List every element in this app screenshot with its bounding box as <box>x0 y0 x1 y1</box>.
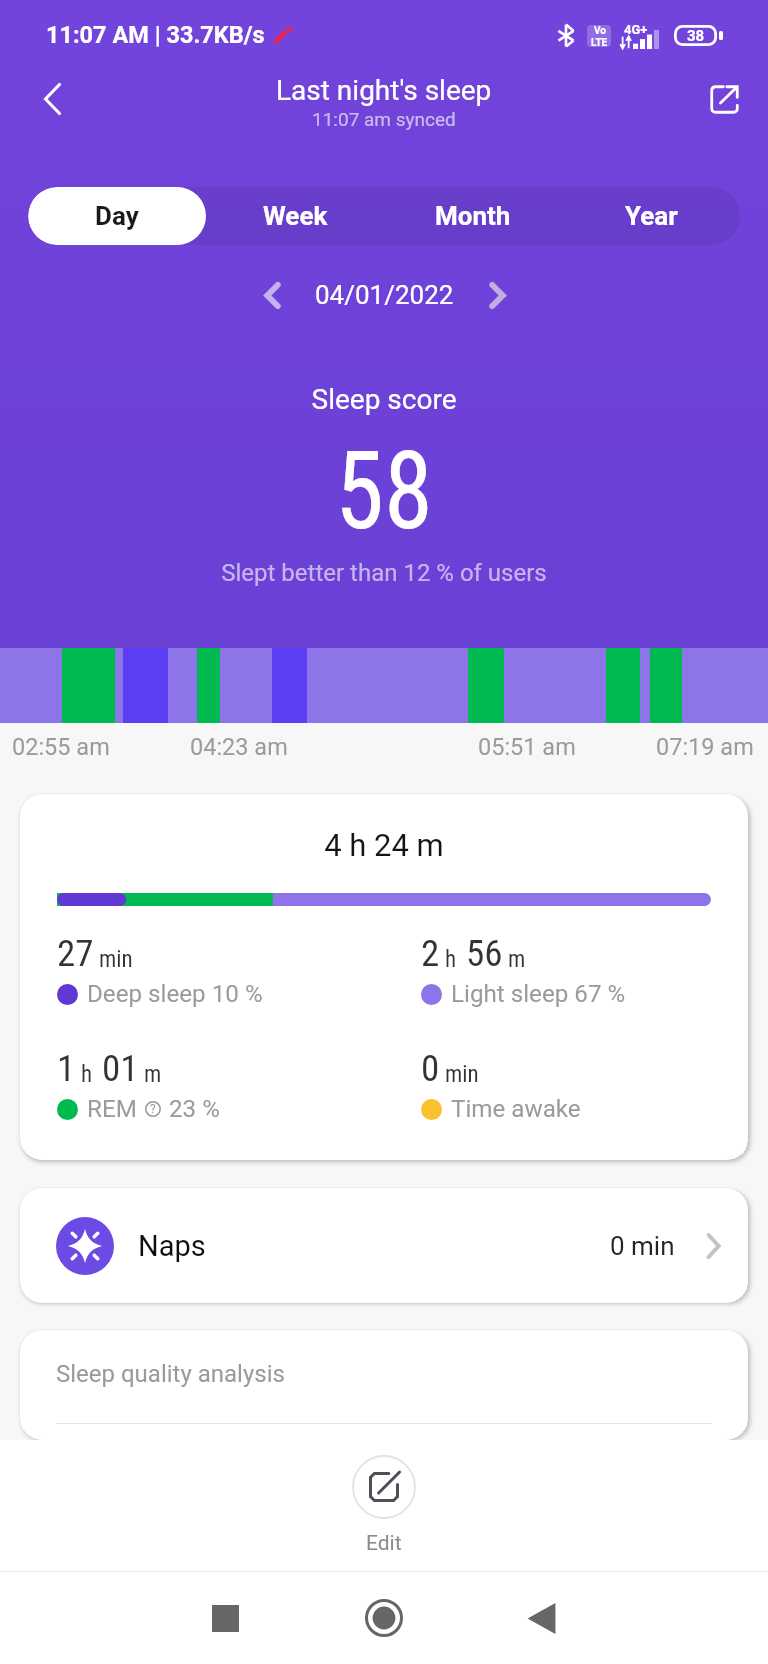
staticText: Month <box>435 201 511 231</box>
staticText: 01 <box>102 1047 139 1090</box>
staticText: Time awake <box>451 1095 581 1123</box>
staticText: 2 <box>421 932 440 975</box>
button[interactable]: Edit <box>312 1449 456 1562</box>
staticText: 04/01/2022 <box>315 280 454 310</box>
staticText: Sleep quality analysis <box>56 1360 285 1388</box>
staticText: 11:07 AM | 33.7KB/s <box>46 21 265 49</box>
button[interactable]: Home <box>349 1583 419 1653</box>
staticText: 11:07 am synced <box>312 108 456 130</box>
staticText: Edit <box>366 1531 402 1556</box>
button[interactable]: Naps <box>0 1188 768 1303</box>
staticText: m <box>144 1061 162 1088</box>
staticText: Day <box>95 201 139 231</box>
staticText: 23 % <box>169 1095 220 1123</box>
staticText: Last night's sleep <box>276 74 492 107</box>
staticText: 27 <box>57 932 94 975</box>
staticText: 1 <box>57 1047 76 1090</box>
staticText: m <box>508 946 526 973</box>
button[interactable]: Day <box>28 187 206 245</box>
staticText: Sleep score <box>0 383 768 416</box>
staticText: min <box>445 1061 479 1088</box>
staticText: Deep sleep 10 % <box>87 980 263 1008</box>
staticText: Naps <box>138 1229 206 1263</box>
staticText: 02:55 am <box>12 733 118 761</box>
staticText: 0 <box>421 1047 440 1090</box>
staticText: Vo <box>594 25 606 37</box>
staticText: LTE <box>591 37 608 47</box>
button[interactable]: Year <box>562 187 740 245</box>
staticText: Year <box>625 201 678 231</box>
staticText: ? <box>150 1102 156 1116</box>
staticText: Light sleep 67 % <box>451 980 626 1008</box>
staticText: 07:19 am <box>656 733 762 761</box>
staticText: 04:23 am <box>190 733 296 761</box>
staticText: min <box>99 946 133 973</box>
button[interactable]: Back <box>506 1583 576 1653</box>
button[interactable]: Week <box>206 187 384 245</box>
button[interactable]: Next day <box>472 270 522 320</box>
staticText: 38 <box>687 27 705 45</box>
staticText: Slept better than 12 % of users <box>0 559 768 587</box>
staticText: REM <box>87 1095 137 1123</box>
button[interactable]: Previous day <box>247 270 297 320</box>
staticText: h <box>81 1061 93 1088</box>
button[interactable]: Month <box>384 187 562 245</box>
button[interactable]: Back <box>24 71 80 127</box>
staticText: Week <box>263 201 328 231</box>
staticText: 0 min <box>610 1231 675 1261</box>
staticText: 4 h 24 m <box>20 827 748 863</box>
staticText: h <box>445 946 457 973</box>
staticText: 56 <box>466 932 503 975</box>
staticText: 58 <box>33 428 735 555</box>
button[interactable]: Share <box>696 71 752 127</box>
staticText: 05:51 am <box>478 733 584 761</box>
staticText: 4G+ <box>624 22 648 37</box>
button[interactable]: Recents <box>190 1583 260 1653</box>
